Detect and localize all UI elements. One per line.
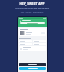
staticText: HEY, SWEET APP — [2, 2, 62, 6]
staticText: Scan the code to the app and get paid — [2, 7, 62, 10]
other: Barcode — [20, 31, 25, 35]
staticText: fast · secure · everywhere — [2, 11, 62, 14]
button[interactable] — [33, 40, 46, 42]
button[interactable] — [19, 67, 46, 70]
button[interactable]: Back — [19, 20, 21, 22]
button[interactable] — [19, 43, 32, 45]
button[interactable] — [19, 46, 46, 51]
button[interactable] — [33, 43, 46, 45]
button[interactable]: Barcode — [19, 28, 46, 36]
button[interactable] — [19, 40, 32, 42]
button[interactable] — [20, 22, 45, 24]
button[interactable] — [19, 63, 46, 66]
